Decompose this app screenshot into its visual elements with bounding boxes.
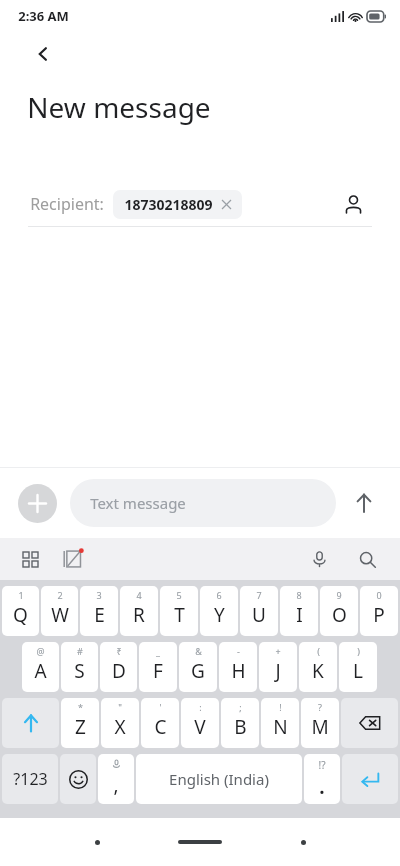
staticText: 7 — [256, 589, 262, 601]
staticText: ! — [279, 701, 282, 713]
staticText: Q — [13, 602, 28, 628]
staticText: T — [174, 602, 185, 628]
staticText: . — [319, 774, 325, 800]
button[interactable]: Shift — [2, 698, 59, 748]
staticText: @ — [36, 645, 45, 657]
button[interactable]: ?123 — [2, 754, 58, 804]
staticText: L — [353, 658, 363, 684]
staticText: _ — [156, 645, 160, 657]
button[interactable]: Recents — [286, 825, 320, 859]
button[interactable]: Choose contact — [336, 187, 370, 221]
button[interactable]: 2 — [41, 586, 78, 636]
staticText: 9 — [336, 589, 342, 601]
staticText: 2 — [57, 589, 63, 601]
staticText: English (India) — [169, 769, 269, 789]
staticText: : — [199, 701, 202, 713]
staticText: * — [78, 701, 83, 713]
button[interactable]: * — [61, 698, 99, 748]
staticText: & — [195, 645, 202, 657]
button[interactable]: Voice input — [304, 544, 334, 574]
button[interactable]: + — [259, 642, 297, 692]
button[interactable]: ₹ — [100, 642, 137, 692]
staticText: ; — [239, 701, 242, 713]
staticText: X — [114, 714, 126, 740]
button[interactable]: Home — [170, 825, 230, 859]
staticText: I — [296, 602, 303, 628]
staticText: F — [153, 658, 163, 684]
button[interactable]: Emoji — [60, 754, 96, 804]
button[interactable]: Comma — [98, 754, 134, 804]
button[interactable]: Send — [346, 485, 382, 521]
button[interactable]: Enter — [342, 754, 398, 804]
staticText: 18730218809 — [124, 195, 213, 214]
button[interactable]: Attach — [18, 484, 57, 523]
button[interactable]: ; — [221, 698, 259, 748]
staticText: U — [252, 602, 266, 628]
button[interactable]: " — [101, 698, 139, 748]
staticText: ) — [357, 645, 360, 657]
button[interactable]: @ — [22, 642, 59, 692]
staticText: 8 — [296, 589, 302, 601]
button[interactable]: 5 — [160, 586, 198, 636]
staticText: 4 — [136, 589, 142, 601]
staticText: Recipient: — [30, 193, 104, 215]
button[interactable]: ) — [339, 642, 377, 692]
button[interactable]: 4 — [120, 586, 158, 636]
button[interactable]: & — [179, 642, 217, 692]
button[interactable]: Text message — [70, 479, 336, 527]
staticText: P — [373, 602, 385, 628]
button[interactable]: ' — [141, 698, 179, 748]
staticText: Text message — [90, 493, 186, 513]
staticText: Y — [214, 602, 225, 628]
button[interactable]: 0 — [360, 586, 398, 636]
staticText: O — [332, 602, 347, 628]
staticText: 1 — [18, 589, 24, 601]
button[interactable]: Keyboard options — [16, 545, 44, 573]
staticText: C — [154, 714, 167, 740]
staticText: !? — [318, 758, 326, 772]
button[interactable]: ? — [301, 698, 339, 748]
staticText: 3 — [96, 589, 102, 601]
button[interactable]: 3 — [80, 586, 118, 636]
staticText: New message — [27, 88, 211, 126]
staticText: - — [237, 645, 240, 657]
button[interactable]: : — [181, 698, 219, 748]
staticText: # — [77, 645, 83, 657]
button[interactable]: 9 — [320, 586, 358, 636]
button[interactable]: 18730218809 — [113, 190, 242, 219]
staticText: ? — [318, 701, 322, 713]
staticText: N — [273, 714, 288, 740]
staticText: E — [94, 602, 105, 628]
staticText: + — [275, 645, 281, 657]
button[interactable]: Space — [136, 754, 302, 804]
button[interactable]: Back — [80, 825, 114, 859]
button[interactable]: Handwriting — [58, 544, 88, 574]
button[interactable]: Back — [28, 39, 58, 69]
staticText: M — [311, 714, 329, 740]
button[interactable]: _ — [139, 642, 177, 692]
staticText: R — [133, 602, 145, 628]
button[interactable]: 1 — [2, 586, 39, 636]
button[interactable]: ! — [261, 698, 299, 748]
staticText: W — [51, 602, 69, 628]
staticText: , — [113, 772, 119, 798]
staticText: B — [234, 714, 247, 740]
button[interactable]: ( — [299, 642, 337, 692]
staticText: 5 — [176, 589, 182, 601]
staticText: A — [34, 658, 47, 684]
button[interactable]: # — [61, 642, 98, 692]
button[interactable]: 8 — [280, 586, 318, 636]
button[interactable]: Period — [304, 754, 340, 804]
button[interactable]: 6 — [200, 586, 238, 636]
staticText: J — [275, 658, 281, 684]
button[interactable]: Search — [352, 544, 382, 574]
staticText: H — [231, 658, 246, 684]
staticText: D — [112, 658, 126, 684]
button[interactable]: Backspace — [341, 698, 398, 748]
staticText: ( — [317, 645, 320, 657]
staticText: G — [191, 658, 205, 684]
button[interactable]: 7 — [240, 586, 278, 636]
staticText: " — [118, 701, 122, 713]
staticText: ' — [159, 701, 162, 713]
button[interactable]: - — [219, 642, 257, 692]
